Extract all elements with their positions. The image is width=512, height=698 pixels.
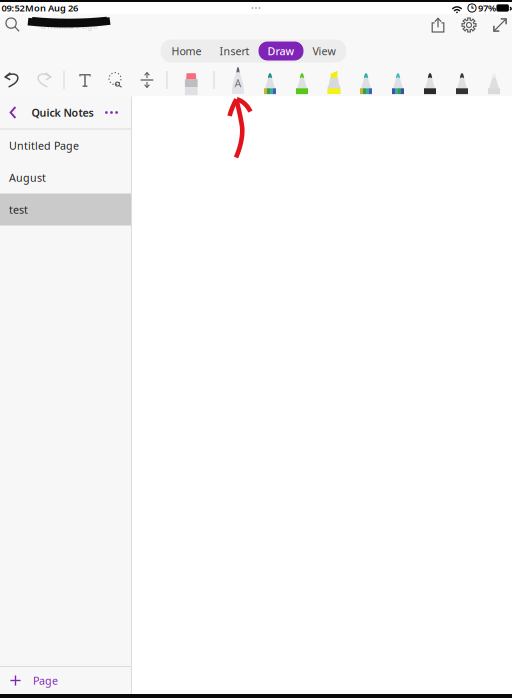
button[interactable]: Page	[0, 667, 131, 694]
staticText: Insert	[219, 44, 249, 58]
button[interactable]: Black pen	[418, 62, 442, 96]
button[interactable]: View	[303, 41, 344, 60]
button[interactable]: Thickness	[138, 71, 156, 89]
staticText: A	[234, 76, 241, 90]
staticText: Home	[171, 44, 201, 58]
button[interactable]: Settings	[461, 17, 477, 33]
staticText: Untitled Page	[40, 19, 98, 32]
button[interactable]: Eraser	[183, 72, 199, 96]
staticText: View	[312, 44, 335, 58]
button[interactable]: August	[0, 161, 131, 193]
button[interactable]: White pen	[482, 62, 506, 96]
staticText: Quick Notes	[31, 105, 93, 120]
button[interactable]: Insert	[210, 41, 258, 60]
staticText: August	[9, 170, 46, 185]
button[interactable]: Redo	[33, 71, 53, 89]
staticText: Mon Aug 26	[25, 2, 78, 14]
staticText: 97%	[478, 2, 496, 14]
button[interactable]: More options	[103, 104, 120, 120]
staticText: Page	[33, 673, 58, 688]
staticText: Untitled Page	[9, 138, 79, 153]
staticText: test	[9, 202, 28, 217]
button[interactable]: Black pen	[450, 62, 474, 96]
button[interactable]: test	[0, 193, 131, 225]
button[interactable]: Pen	[386, 62, 410, 96]
button[interactable]: Undo	[3, 71, 23, 89]
button[interactable]: Back	[5, 100, 22, 125]
button[interactable]: Lasso select	[107, 71, 125, 89]
staticText: Draw	[267, 44, 294, 58]
button[interactable]: Scribble pen	[226, 62, 250, 96]
button[interactable]: Share	[430, 17, 446, 33]
button[interactable]: Draw	[258, 41, 303, 60]
button[interactable]: Text	[76, 71, 93, 90]
button[interactable]: Highlighter	[322, 62, 346, 96]
button[interactable]: Pen	[354, 62, 378, 96]
button[interactable]: Pen	[258, 62, 282, 96]
button[interactable]: Full screen	[492, 17, 507, 32]
staticText: 09:52	[1, 2, 24, 14]
button[interactable]: Untitled Page	[0, 129, 131, 161]
button[interactable]: Green pen	[290, 62, 314, 96]
button[interactable]: Search	[4, 16, 21, 33]
button[interactable]: Home	[162, 41, 210, 60]
